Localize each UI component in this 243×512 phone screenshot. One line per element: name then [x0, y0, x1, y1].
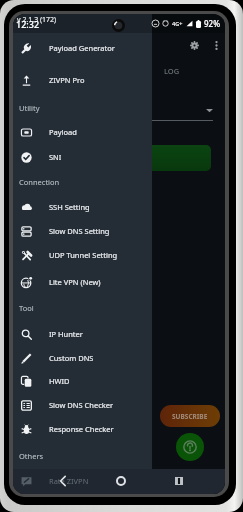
staticText: Custom DNS [49, 353, 94, 363]
button[interactable]: Custom DNS [13, 346, 152, 370]
staticText: Others [19, 451, 44, 461]
staticText: Response Checker [49, 424, 114, 434]
button[interactable]: Response Checker [13, 417, 152, 441]
button[interactable]: Back [54, 472, 71, 489]
button[interactable]: SUBSCRIBE [160, 405, 220, 427]
staticText: ZIVPN Pro [49, 75, 85, 85]
staticText: SSH Setting [49, 202, 90, 212]
button[interactable]: Slow DNS Setting [13, 219, 152, 243]
button[interactable]: More options [205, 34, 225, 56]
staticText: Payload Generator [49, 43, 115, 53]
button[interactable]: Slow DNS Checker [13, 393, 152, 417]
staticText: Tool [19, 303, 34, 313]
staticText: Rate ZIVPN [49, 476, 89, 486]
staticText: Payload [27, 181, 57, 192]
button[interactable]: SNI [13, 145, 152, 169]
button[interactable]: Recent apps [170, 472, 187, 489]
staticText: Slow DNS [27, 198, 63, 209]
button[interactable]: HOME [13, 61, 119, 81]
button[interactable]: UDP Tunnel Setting [13, 243, 152, 267]
button[interactable]: Help [176, 433, 204, 461]
staticText: UDP Tunnel Setting [49, 250, 118, 260]
button[interactable]: Payload [13, 120, 152, 144]
button[interactable]: LOG [119, 61, 225, 81]
staticText: HWID [49, 376, 70, 386]
staticText: SNI [49, 152, 62, 162]
button[interactable]: Lite VPN (New) [13, 270, 152, 294]
button[interactable]: IP Hunter [13, 322, 152, 346]
button[interactable]: Settings [183, 34, 205, 56]
staticText: Slow DNS Checker [49, 400, 114, 410]
button[interactable]: CONNECT [27, 145, 211, 171]
button[interactable]: ZIVPN Pro [13, 68, 152, 92]
button[interactable]: Rate ZIVPN [13, 469, 225, 493]
staticText: 12:32 [16, 18, 40, 30]
staticText: Connection [19, 177, 60, 187]
staticText: SUBSCRIBE [172, 412, 208, 421]
button[interactable]: Home [112, 472, 129, 489]
staticText: Utility [19, 103, 40, 113]
button[interactable]: SSH Setting [13, 195, 152, 219]
staticText: 4G+ [172, 20, 183, 27]
button[interactable]: HWID [13, 369, 152, 393]
staticText: 92% [204, 18, 220, 29]
staticText: v 2.1.3 (172) [17, 15, 57, 25]
staticText: IP Hunter [49, 329, 83, 339]
staticText: Slow DNS Setting [49, 226, 110, 236]
staticText: Payload [49, 127, 77, 137]
button[interactable]: Default [27, 102, 213, 118]
staticText: Default [27, 105, 55, 116]
staticText: LOG [164, 66, 180, 76]
button[interactable]: Payload Generator [13, 36, 152, 60]
staticText: Lite VPN (New) [49, 277, 101, 287]
